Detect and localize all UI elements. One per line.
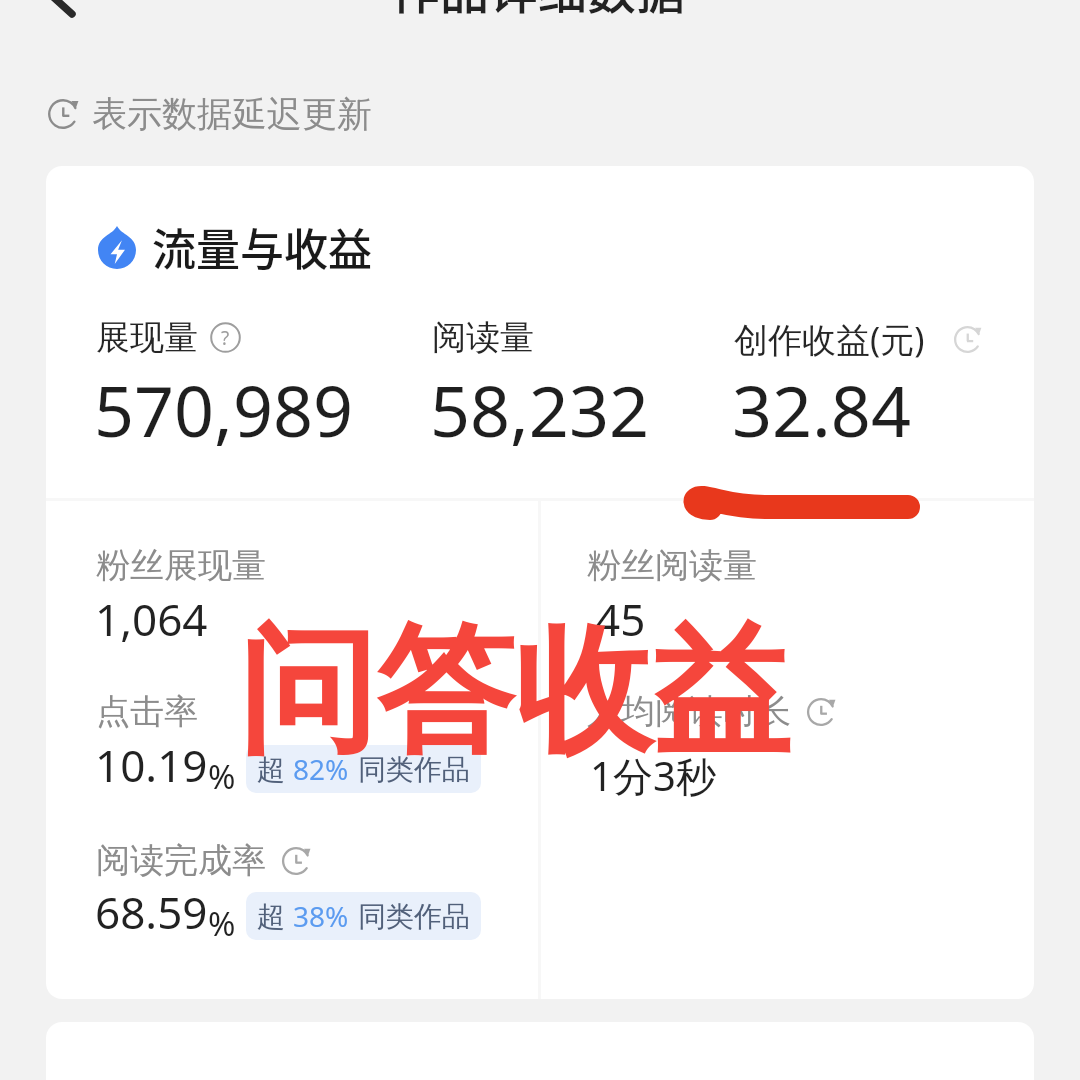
staticText: 1,064 [95,589,208,649]
button[interactable] [96,308,416,448]
button[interactable] [734,308,984,448]
staticText: 问答收益 [238,605,790,779]
button[interactable] [570,533,1020,659]
staticText: 32.84 [732,362,911,457]
staticText: 570,989 [94,362,353,457]
staticText: 超 [257,899,285,934]
staticText: 45 [595,589,646,649]
button[interactable]: Back [20,0,130,20]
staticText: 阅读量 [432,316,534,359]
button[interactable]: 超 [246,892,481,940]
button[interactable] [80,679,530,805]
staticText: % [208,754,236,799]
staticText: ? [221,325,230,351]
staticText: 粉丝展现量 [96,544,266,587]
staticText: 阅读完成率 [96,839,266,882]
button[interactable] [570,679,1020,805]
button[interactable]: Help [210,322,241,353]
staticText: 表示数据延迟更新 [92,92,372,136]
staticText: 同类作品 [358,752,470,787]
staticText: 82% [293,750,349,788]
staticText: 38% [293,897,349,935]
staticText: 展现量 [96,316,198,359]
staticText: 1分3秒 [590,748,716,803]
staticText: 流量与收益 [152,215,372,279]
staticText: 创作收益(元) [734,316,925,362]
staticText: 68.59 [95,882,208,942]
staticText: 58,232 [430,362,649,457]
button[interactable] [80,533,530,659]
button[interactable] [80,828,530,954]
button[interactable] [432,308,722,448]
staticText: 点击率 [96,690,198,733]
staticText: 超 [257,752,285,787]
staticText: 人均阅读时长 [587,690,791,733]
staticText: 作品详细数据 [391,0,686,23]
button[interactable]: 超 [246,745,481,793]
staticText: % [208,901,236,946]
staticText: 10.19 [95,735,208,795]
staticText: 粉丝阅读量 [587,544,757,587]
staticText: 同类作品 [358,899,470,934]
